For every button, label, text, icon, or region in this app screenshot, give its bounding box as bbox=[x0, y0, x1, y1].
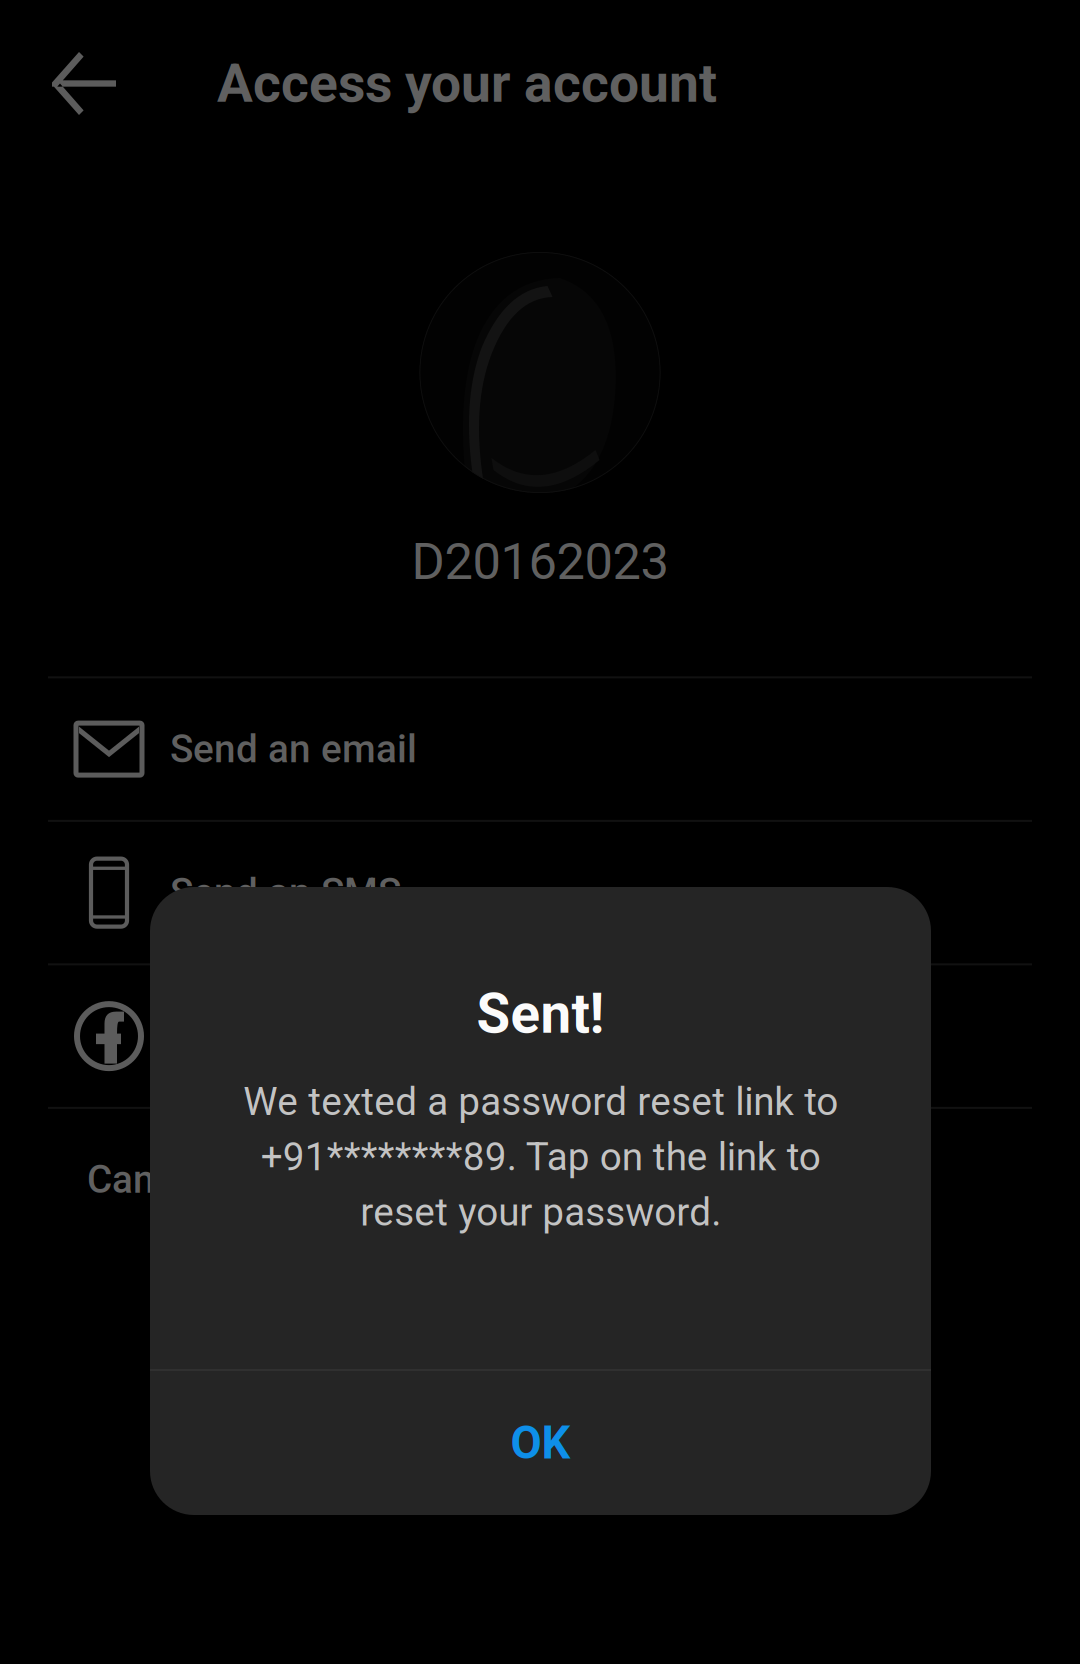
button[interactable]: OK bbox=[150, 1371, 931, 1515]
staticText: Log in with Facebook bbox=[170, 1013, 539, 1059]
button[interactable]: Send an email bbox=[48, 678, 1032, 820]
button[interactable]: Back bbox=[0, 13, 143, 153]
staticText: Sent! bbox=[476, 982, 604, 1046]
button[interactable]: Send an SMS bbox=[48, 822, 1032, 963]
button[interactable]: Can't reset your password? bbox=[48, 1109, 1032, 1250]
staticText: Access your account bbox=[217, 52, 717, 115]
button[interactable]: Log in with Facebook bbox=[48, 965, 1032, 1107]
staticText: Can't reset your password? bbox=[87, 1157, 555, 1202]
staticText: OK bbox=[510, 1416, 570, 1469]
staticText: D20162023 bbox=[411, 532, 668, 591]
staticText: Send an email bbox=[170, 726, 417, 772]
staticText: Send an SMS bbox=[170, 870, 401, 915]
staticText: We texted a password reset link to +91**… bbox=[243, 1079, 838, 1235]
